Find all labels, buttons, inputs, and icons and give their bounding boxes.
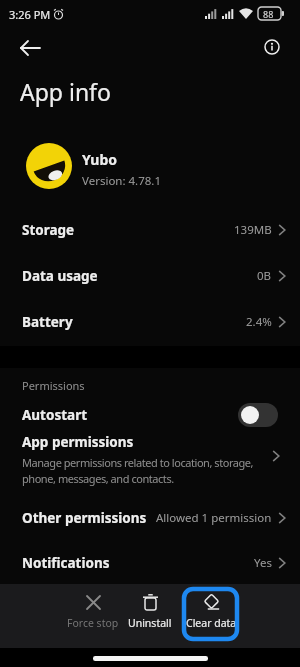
button[interactable]: Data usage — [0, 255, 300, 297]
staticText: 88 — [263, 8, 274, 20]
staticText: Force stop — [67, 616, 119, 630]
button[interactable]: Clear data — [180, 590, 242, 638]
staticText: Autostart — [22, 406, 88, 424]
button[interactable]: Notifications — [0, 542, 300, 584]
staticText: App permissions — [22, 433, 134, 451]
staticText: Manage permissions related to location, … — [22, 455, 254, 470]
staticText: 0B — [257, 268, 272, 284]
staticText: Battery — [22, 313, 73, 331]
button[interactable]: App permissions — [0, 433, 300, 486]
staticText: Other permissions — [22, 509, 147, 527]
staticText: Yubo — [82, 150, 118, 169]
staticText: Notifications — [22, 554, 110, 572]
staticText: 3:26 PM — [9, 7, 51, 22]
button[interactable]: Battery — [0, 301, 300, 343]
button[interactable]: Storage — [0, 209, 300, 251]
button[interactable]: Uninstall — [119, 590, 181, 638]
staticText: Data usage — [22, 267, 98, 285]
staticText: Version: 4.78.1 — [82, 173, 161, 189]
staticText: Storage — [22, 221, 75, 239]
staticText: Uninstall — [128, 616, 172, 630]
staticText: App info — [20, 76, 111, 107]
staticText: 2.4% — [246, 314, 272, 330]
staticText: Allowed 1 permission — [156, 510, 272, 526]
button[interactable] — [254, 29, 289, 64]
staticText: Yes — [254, 555, 272, 571]
staticText: Permissions — [22, 378, 85, 393]
button[interactable] — [12, 30, 48, 66]
button[interactable]: Other permissions — [0, 497, 300, 539]
staticText: phone, messages, and contacts. — [22, 471, 174, 486]
button[interactable]: Autostart — [0, 394, 300, 436]
staticText: 139MB — [234, 222, 272, 238]
staticText: Clear data — [186, 616, 237, 630]
button[interactable]: Force stop — [62, 590, 124, 638]
